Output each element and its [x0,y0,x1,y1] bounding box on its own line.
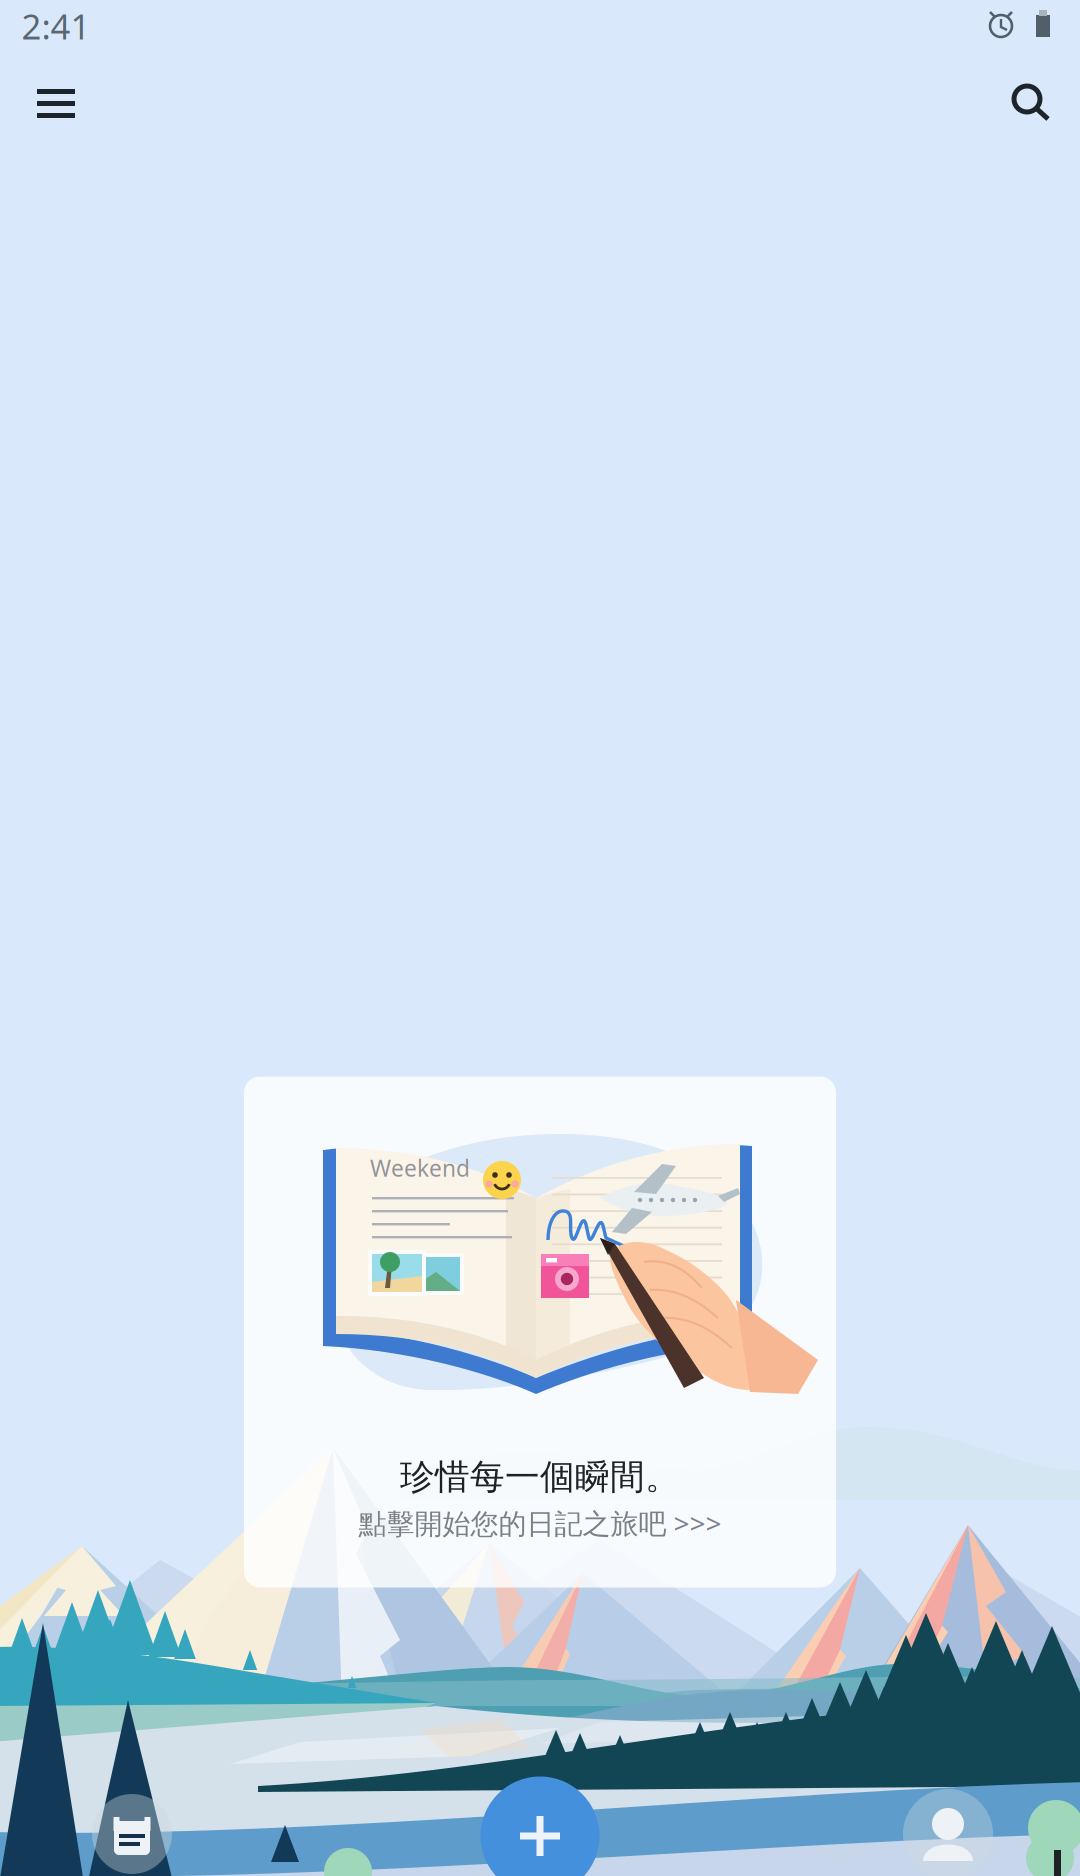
button[interactable]: New entry [480,1776,600,1876]
button[interactable]: Menu [20,70,92,138]
staticText: 珍惜每一個瞬間。 [400,1456,680,1498]
staticText: 2:41 [21,3,90,49]
button[interactable]: Profile [900,1786,996,1876]
button[interactable]: Search [993,65,1061,133]
staticText: Weekend [370,1153,470,1183]
button[interactable]: Diary list [88,1790,176,1876]
button[interactable] [244,1076,836,1587]
staticText: 點擊開始您的日記之旅吧 >>> [358,1504,721,1542]
